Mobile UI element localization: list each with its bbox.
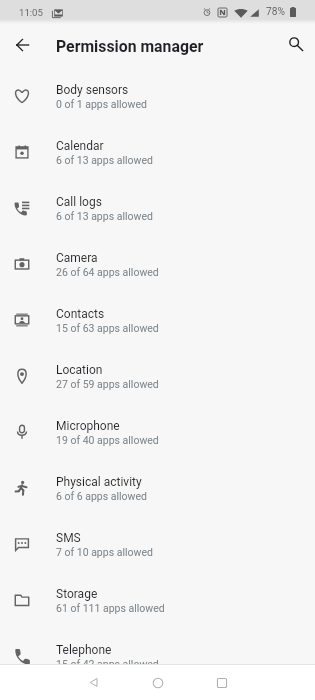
staticText: Body sensors — [56, 83, 129, 97]
button[interactable]: SMS — [0, 516, 315, 572]
staticText: 7 of 10 apps allowed — [56, 546, 153, 558]
button[interactable]: Microphone — [0, 404, 315, 460]
button[interactable]: Storage — [0, 572, 315, 628]
button[interactable]: Body sensors — [0, 68, 315, 124]
staticText: Microphone — [56, 419, 120, 433]
button[interactable]: Back — [73, 665, 113, 700]
button[interactable]: Contacts — [0, 292, 315, 348]
staticText: 6 of 13 apps allowed — [56, 154, 153, 166]
staticText: 19 of 40 apps allowed — [56, 434, 159, 446]
staticText: 61 of 111 apps allowed — [56, 602, 165, 614]
staticText: Physical activity — [56, 475, 142, 489]
button[interactable]: Call logs — [0, 180, 315, 236]
staticText: 6 of 13 apps allowed — [56, 210, 153, 222]
button[interactable]: Physical activity — [0, 460, 315, 516]
staticText: Calendar — [56, 139, 104, 153]
staticText: Camera — [56, 251, 98, 265]
staticText: 15 of 42 apps allowed — [56, 658, 159, 670]
button[interactable]: Back — [10, 33, 34, 57]
staticText: 0 of 1 apps allowed — [56, 98, 147, 110]
button[interactable]: Recents — [202, 665, 242, 700]
staticText: Call logs — [56, 195, 102, 209]
staticText: Permission manager — [56, 37, 204, 56]
staticText: 15 of 63 apps allowed — [56, 322, 159, 334]
staticText: 26 of 64 apps allowed — [56, 266, 159, 278]
button[interactable]: Telephone — [0, 628, 315, 684]
staticText: 6 of 6 apps allowed — [56, 490, 147, 502]
staticText: 27 of 59 apps allowed — [56, 378, 159, 390]
staticText: Location — [56, 363, 103, 377]
staticText: SMS — [56, 531, 81, 545]
staticText: Contacts — [56, 307, 105, 321]
button[interactable]: Camera — [0, 236, 315, 292]
staticText: Telephone — [56, 643, 112, 657]
staticText: 78% — [266, 6, 285, 18]
staticText: 11:05 — [19, 7, 43, 18]
button[interactable]: Search — [284, 32, 308, 56]
staticText: Storage — [56, 587, 98, 601]
button[interactable]: Home — [138, 665, 178, 700]
button[interactable]: Calendar — [0, 124, 315, 180]
button[interactable]: Location — [0, 348, 315, 404]
